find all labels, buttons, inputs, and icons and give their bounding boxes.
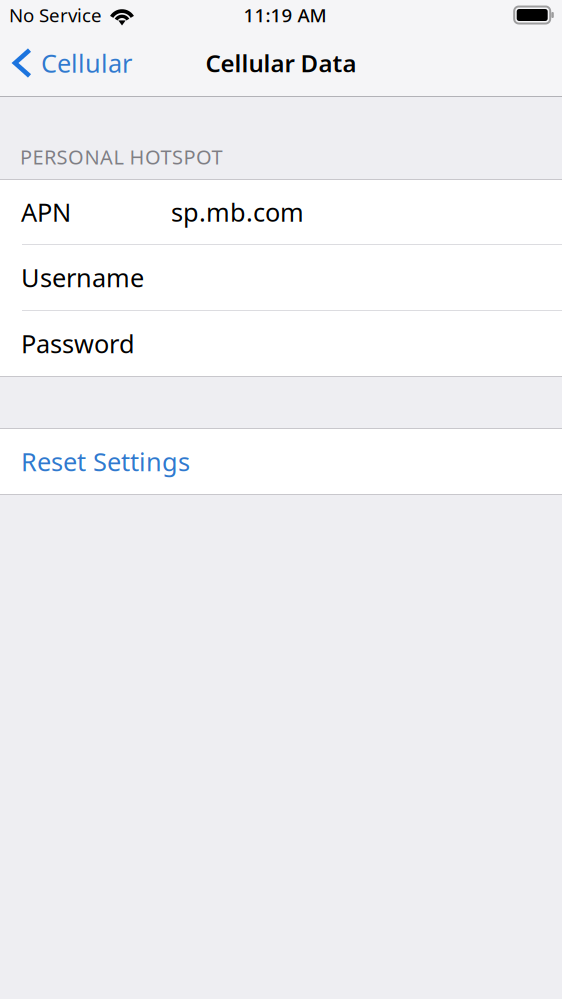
button[interactable]: Username	[0, 245, 562, 310]
staticText: Cellular	[41, 46, 132, 80]
staticText: Reset Settings	[21, 445, 190, 478]
staticText: sp.mb.com	[171, 195, 304, 229]
button[interactable]: Password	[0, 311, 562, 376]
button[interactable]: APN	[0, 180, 562, 244]
staticText: 11:19 AM	[243, 3, 326, 27]
staticText: APN	[21, 195, 71, 229]
staticText: Username	[21, 261, 144, 294]
staticText: No Service	[9, 3, 102, 27]
button[interactable]: Back to Cellular	[0, 38, 144, 88]
button[interactable]: Reset Settings	[0, 429, 562, 494]
staticText: Password	[21, 327, 135, 360]
staticText: Cellular Data	[205, 47, 356, 79]
staticText: PERSONAL HOTSPOT	[20, 143, 222, 170]
